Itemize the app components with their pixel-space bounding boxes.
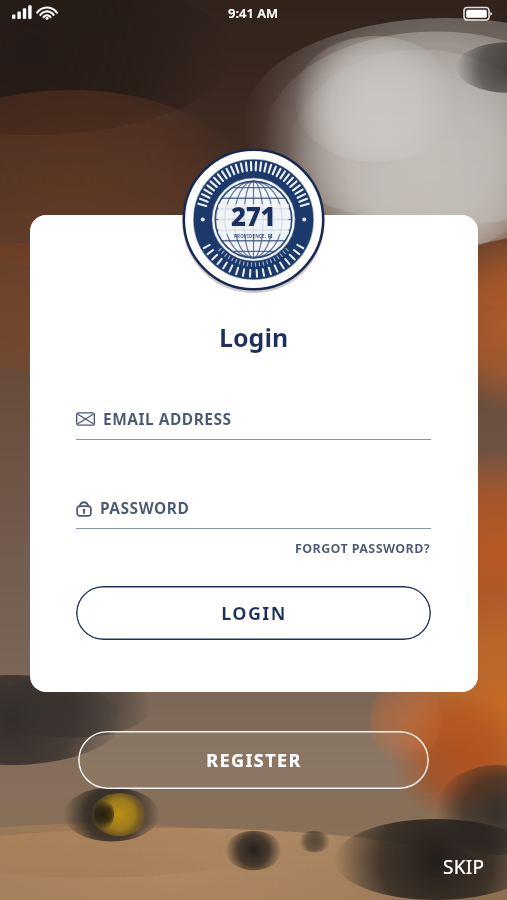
staticText: PASSWORD [100,497,190,518]
button[interactable]: FORGOT PASSWORD? [295,537,431,560]
staticText: Login [219,320,289,354]
button[interactable]: LOGIN [76,586,431,640]
button[interactable]: PASSWORD [76,497,431,529]
staticText: PROVIDENCE, RI [234,233,273,239]
staticText: LOGIN [221,601,287,626]
staticText: 9:41 AM [228,4,279,22]
button[interactable]: SKIP [443,854,507,900]
staticText: REGISTER [206,748,302,773]
button[interactable]: REGISTER [78,731,429,789]
staticText: 271 [231,198,276,233]
staticText: EMAIL ADDRESS [103,408,232,429]
button[interactable]: EMAIL ADDRESS [76,408,431,440]
